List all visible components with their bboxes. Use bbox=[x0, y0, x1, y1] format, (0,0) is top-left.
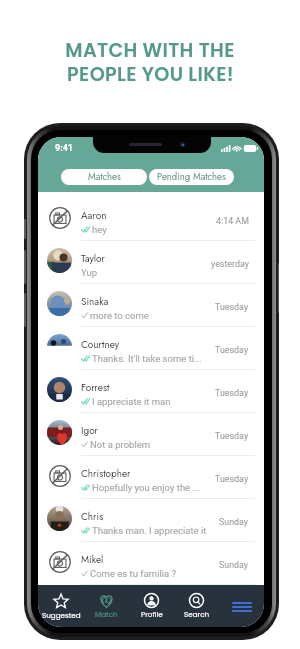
staticText: Tuesday bbox=[215, 302, 249, 312]
staticText: Aaron bbox=[81, 208, 107, 222]
staticText: Forrest bbox=[81, 380, 110, 394]
button[interactable]: Taylor bbox=[38, 241, 264, 284]
button[interactable]: Suggested bbox=[38, 585, 84, 627]
staticText: Sinaka bbox=[81, 294, 109, 308]
staticText: Search bbox=[184, 609, 210, 619]
button[interactable]: Aaron bbox=[38, 198, 264, 241]
staticText: Christopher bbox=[81, 466, 131, 480]
staticText: Pending Matches bbox=[157, 170, 226, 184]
staticText: Chris bbox=[81, 509, 104, 523]
staticText: Match bbox=[95, 609, 118, 619]
staticText: Hopefully you enjoy the ... bbox=[92, 482, 201, 493]
staticText: more to come bbox=[90, 310, 149, 321]
button[interactable]: Pending Matches bbox=[149, 169, 234, 185]
staticText: Tuesday bbox=[215, 388, 249, 398]
button[interactable]: Forrest bbox=[38, 370, 264, 413]
staticText: Tuesday bbox=[215, 474, 249, 484]
staticText: Suggested bbox=[42, 610, 81, 620]
button[interactable]: Match bbox=[84, 585, 129, 627]
staticText: 9:41 bbox=[55, 143, 74, 154]
button[interactable]: Sinaka bbox=[38, 284, 264, 327]
button[interactable]: Mikel bbox=[38, 542, 264, 585]
staticText: Mikel bbox=[81, 552, 104, 566]
staticText: MATCH WITH THE bbox=[65, 37, 235, 64]
staticText: Yup bbox=[81, 267, 98, 278]
staticText: Sunday bbox=[219, 517, 249, 527]
staticText: Tuesday bbox=[215, 345, 249, 355]
staticText: Taylor bbox=[81, 251, 105, 265]
button[interactable]: Christopher bbox=[38, 456, 264, 499]
button[interactable]: Profile bbox=[129, 585, 174, 627]
staticText: I appreciate it man bbox=[92, 396, 171, 407]
staticText: Courtney bbox=[81, 337, 120, 351]
staticText: 4:14 AM bbox=[216, 216, 249, 226]
staticText: Thanks. It'll take some ti... bbox=[92, 353, 202, 364]
staticText: yesterday bbox=[211, 259, 249, 269]
staticText: Igor bbox=[81, 423, 99, 437]
staticText: Profile bbox=[141, 609, 163, 619]
button[interactable]: Chris bbox=[38, 499, 264, 542]
staticText: Not a problem bbox=[90, 439, 151, 450]
staticText: PEOPLE YOU LIKE! bbox=[67, 61, 234, 88]
staticText: Matches bbox=[88, 170, 121, 184]
staticText: Thanks man. I appreciate it bbox=[92, 525, 207, 536]
button[interactable]: Search bbox=[174, 585, 219, 627]
staticText: Sunday bbox=[219, 560, 249, 570]
button[interactable]: Courtney bbox=[38, 327, 264, 370]
staticText: Tuesday bbox=[215, 431, 249, 441]
staticText: hey bbox=[92, 224, 107, 235]
button[interactable]: Igor bbox=[38, 413, 264, 456]
button[interactable]: Menu bbox=[219, 585, 264, 627]
button[interactable]: Matches bbox=[61, 169, 147, 185]
staticText: Come es tu familia ? bbox=[90, 568, 177, 579]
